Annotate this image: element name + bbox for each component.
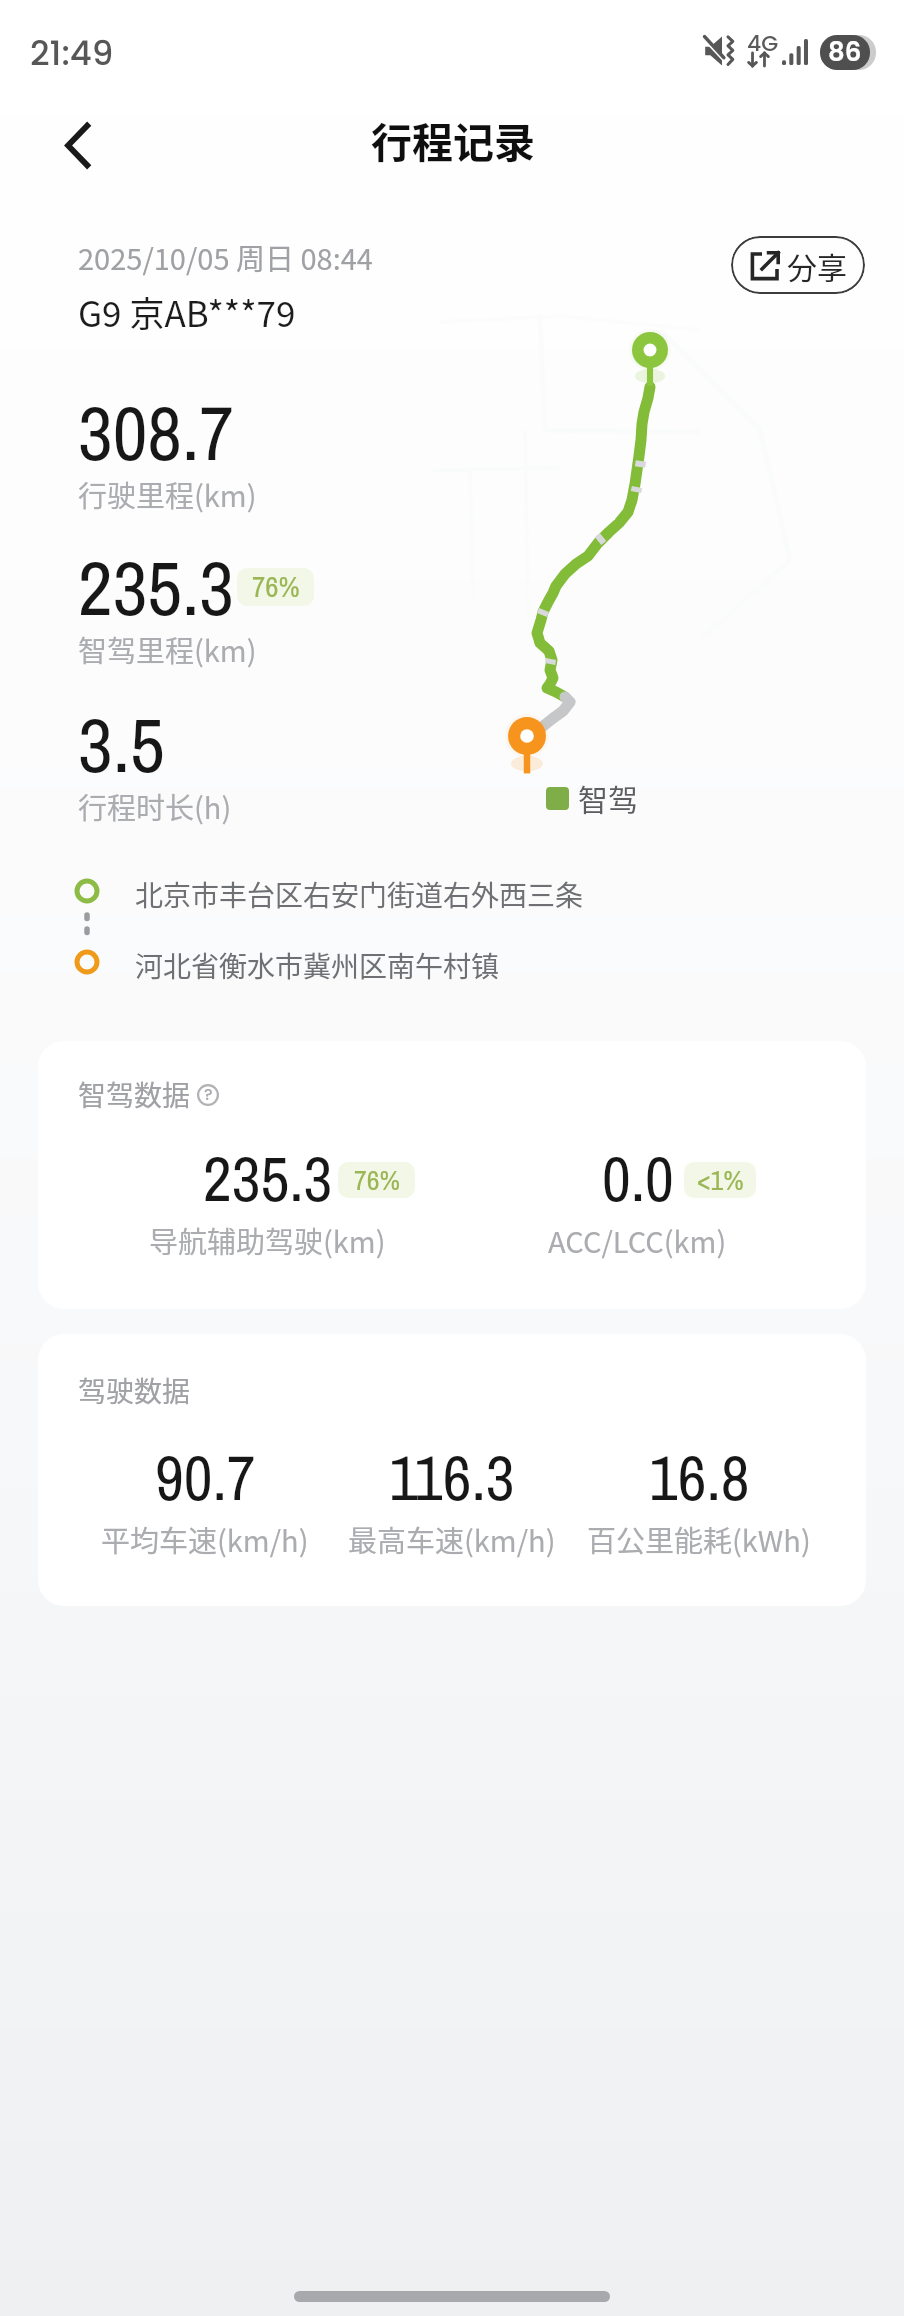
staticText: 3.5: [78, 693, 165, 795]
staticText: 驾驶数据: [78, 1370, 191, 1411]
button[interactable]: Help: [196, 1083, 220, 1107]
button[interactable]: 分享: [731, 236, 865, 294]
staticText: 百公里能耗(kWh): [587, 1518, 811, 1560]
staticText: 智驾里程(km): [78, 628, 257, 670]
staticText: 90.7: [155, 1435, 256, 1520]
staticText: 21:49: [30, 29, 114, 77]
staticText: 86: [828, 35, 862, 69]
staticText: 16.8: [649, 1435, 750, 1520]
staticText: 行程时长(h): [78, 785, 232, 827]
staticText: 智驾: [578, 776, 638, 819]
staticText: ACC/LCC(km): [548, 1219, 727, 1261]
staticText: 最高车速(km/h): [348, 1518, 556, 1560]
staticText: 308.7: [78, 381, 234, 483]
button[interactable]: Back: [43, 110, 113, 180]
staticText: 235.3: [78, 536, 234, 638]
staticText: G9 京AB***79: [78, 286, 296, 337]
staticText: 分享: [787, 244, 847, 287]
staticText: 4G: [747, 28, 779, 59]
staticText: 76%: [252, 568, 300, 605]
staticText: 76%: [354, 1162, 400, 1197]
staticText: 河北省衡水市冀州区南午村镇: [135, 945, 500, 986]
staticText: 平均车速(km/h): [101, 1518, 309, 1560]
staticText: 导航辅助驾驶(km): [149, 1219, 386, 1261]
staticText: <1%: [697, 1162, 744, 1197]
staticText: 2025/10/05 周日 08:44: [78, 236, 373, 278]
staticText: 235.3: [203, 1136, 333, 1221]
staticText: 0.0: [602, 1136, 674, 1221]
staticText: ?: [204, 1083, 213, 1105]
staticText: 北京市丰台区右安门街道右外西三条: [135, 874, 584, 915]
staticText: 116.3: [389, 1435, 515, 1520]
staticText: 智驾数据: [78, 1074, 191, 1115]
staticText: 行驶里程(km): [78, 473, 257, 515]
staticText: 行程记录: [371, 110, 535, 169]
